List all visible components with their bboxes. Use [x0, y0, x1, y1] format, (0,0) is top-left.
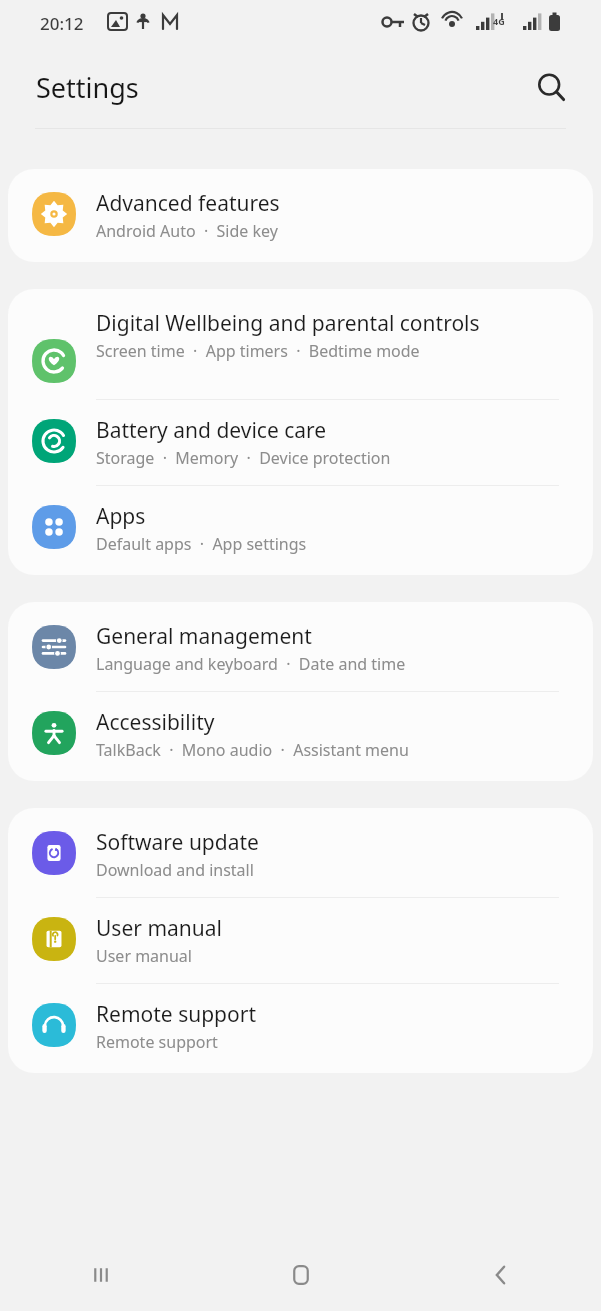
- staticText: 4G: [493, 15, 505, 27]
- staticText: General management: [96, 622, 312, 651]
- staticText: User manual: [96, 945, 192, 967]
- staticText: Digital Wellbeing and parental controls: [96, 309, 480, 338]
- button[interactable]: Digital Wellbeing and parental controls: [8, 291, 593, 399]
- staticText: Download and install: [96, 859, 254, 881]
- button[interactable]: General management: [8, 604, 593, 691]
- staticText: Software update: [96, 828, 259, 857]
- button[interactable]: Software update: [8, 810, 593, 897]
- button[interactable]: Back: [401, 1239, 601, 1311]
- button[interactable]: User manual: [8, 898, 593, 983]
- button[interactable]: Search: [527, 63, 575, 111]
- staticText: Accessibility: [96, 708, 215, 737]
- staticText: Language and keyboard · Date and time: [96, 653, 406, 675]
- staticText: Default apps · App settings: [96, 533, 307, 555]
- staticText: Apps: [96, 502, 146, 531]
- button[interactable]: Remote support: [8, 984, 593, 1071]
- button[interactable]: Apps: [8, 486, 593, 573]
- staticText: Advanced features: [96, 189, 280, 218]
- staticText: Screen time · App timers · Bedtime mode: [96, 340, 420, 362]
- button[interactable]: Accessibility: [8, 692, 593, 779]
- staticText: Remote support: [96, 1031, 218, 1053]
- staticText: Battery and device care: [96, 416, 327, 445]
- staticText: Remote support: [96, 1000, 256, 1029]
- staticText: Storage · Memory · Device protection: [96, 447, 391, 469]
- staticText: Settings: [36, 69, 139, 106]
- button[interactable]: Battery and device care: [8, 400, 593, 485]
- staticText: 20:12: [40, 12, 84, 35]
- staticText: User manual: [96, 914, 222, 943]
- staticText: TalkBack · Mono audio · Assistant menu: [96, 739, 409, 761]
- staticText: Android Auto · Side key: [96, 220, 278, 242]
- button[interactable]: Home: [201, 1239, 401, 1311]
- button[interactable]: Advanced features: [8, 171, 593, 260]
- button[interactable]: Recents: [0, 1239, 201, 1311]
